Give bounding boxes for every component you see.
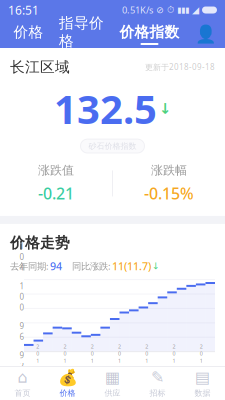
staticText: 1 (91, 357, 94, 364)
staticText: 8 (173, 364, 176, 371)
staticText: 8 (145, 364, 148, 371)
button[interactable]: 💰 (45, 366, 90, 400)
button[interactable]: 价格 (11, 20, 45, 48)
staticText: 0 (145, 350, 148, 357)
staticText: 2 (200, 343, 203, 350)
staticText: 价格 (13, 23, 43, 41)
staticText: 8 (91, 364, 94, 371)
staticText: ▮▮▮ (177, 5, 189, 15)
staticText: 4 (63, 378, 66, 385)
button[interactable]: 个人中心 (193, 20, 219, 48)
staticText: ⊘ (156, 5, 164, 15)
staticText: -0.21 (38, 183, 74, 204)
staticText: 价格指数 (119, 23, 179, 41)
staticText: 6 (118, 378, 121, 385)
staticText: 0 (200, 350, 203, 357)
staticText: 9 (200, 378, 203, 385)
staticText: 涨跌值 (38, 163, 74, 178)
staticText: 1 (63, 357, 66, 364)
staticText: 11(11.7) (112, 259, 151, 273)
staticText: 2 (63, 343, 66, 350)
button[interactable]: 价格指数 (117, 20, 181, 48)
staticText: 价格 (59, 388, 75, 398)
button[interactable]: ▦ (90, 366, 135, 400)
staticText: 砂石价格指数 (88, 141, 136, 151)
staticText: ◢ (192, 5, 199, 15)
button[interactable]: ⌂ (0, 366, 45, 400)
staticText: 0 (173, 350, 176, 357)
staticText: 2 (173, 343, 176, 350)
staticText: 2 (145, 343, 148, 350)
staticText: 132.5 (54, 82, 157, 135)
staticText: 8 (200, 364, 203, 371)
staticText: ⏱ (167, 5, 174, 14)
staticText: 2 (91, 343, 94, 350)
staticText: 0 (36, 350, 39, 357)
staticText: 💰 (57, 368, 77, 386)
staticText: 2 (36, 343, 39, 350)
staticText: ▦ (105, 368, 120, 386)
button[interactable]: ✎ (135, 366, 180, 400)
staticText: 1 (118, 357, 121, 364)
staticText: 104 (19, 241, 24, 273)
staticText: ↓ (152, 261, 160, 271)
staticText: 指导价格 (59, 14, 104, 50)
staticText: ↓ (159, 100, 171, 117)
staticText: 2 (118, 343, 121, 350)
staticText: 数据 (194, 388, 210, 398)
staticText: 0.51K/s (122, 4, 153, 16)
staticText: 去年同期: (10, 260, 49, 272)
staticText: 0 (200, 371, 203, 378)
staticText: 0 (118, 371, 121, 378)
staticText: 招标 (149, 388, 165, 398)
staticText: 8 (36, 364, 39, 371)
staticText: 涨跌幅 (151, 163, 187, 178)
button[interactable]: 指导价格 (57, 20, 106, 48)
button[interactable]: ▤ (180, 366, 225, 400)
staticText: 1 (145, 357, 148, 364)
staticText: 0 (63, 350, 66, 357)
staticText: 8 (118, 364, 121, 371)
staticText: 8 (63, 364, 66, 371)
staticText: 1 (36, 357, 39, 364)
staticText: ▤ (195, 368, 210, 386)
staticText: 96 (19, 321, 24, 342)
staticText: 92 (19, 350, 24, 371)
staticText: 👤 (195, 24, 217, 44)
staticText: 供应 (104, 388, 120, 398)
staticText: 首页 (14, 388, 30, 398)
staticText: 0 (91, 350, 94, 357)
staticText: 0 (63, 371, 66, 378)
staticText: 更新于2018-09-18 (145, 62, 215, 72)
staticText: 1 (173, 357, 176, 364)
staticText: 100 (19, 281, 24, 313)
staticText: 94 (50, 259, 62, 273)
staticText: 同比涨跌: (72, 260, 111, 272)
staticText: ⌂ (17, 368, 27, 386)
staticText: -0.15% (144, 183, 194, 204)
staticText: 1 (200, 357, 203, 364)
staticText: 88 (19, 379, 24, 400)
staticText: ✎ (151, 368, 164, 386)
staticText: 16:51 (8, 2, 39, 18)
staticText: 0 (118, 350, 121, 357)
staticText: 价格走势 (10, 234, 70, 252)
staticText: 长江区域 (10, 58, 70, 76)
